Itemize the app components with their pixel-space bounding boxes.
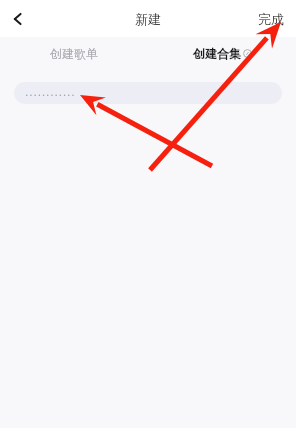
staticText: 创建歌单 [50, 46, 98, 61]
staticText: 创建合集 [193, 46, 241, 61]
staticText: 新建 [135, 11, 161, 27]
button[interactable] [14, 82, 282, 104]
button[interactable]: Back [4, 5, 32, 33]
button[interactable]: 创建歌单 [0, 37, 148, 70]
button[interactable]: 完成 [254, 7, 288, 31]
staticText: 完成 [258, 11, 284, 27]
button[interactable]: 创建合集 [148, 37, 296, 70]
